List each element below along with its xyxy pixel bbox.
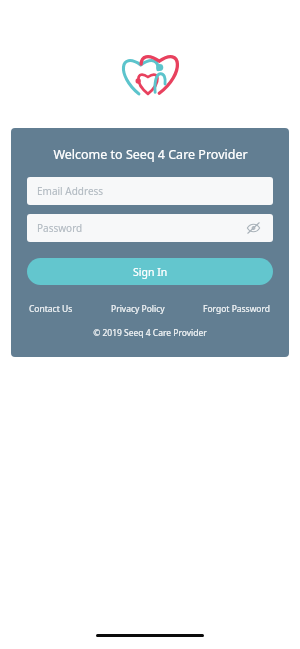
button[interactable]: Show password [243, 218, 263, 238]
staticText: Contact Us [29, 303, 73, 315]
button[interactable]: Forgot Password [201, 301, 273, 317]
button[interactable]: Password [27, 214, 273, 242]
button[interactable]: Contact Us [27, 301, 75, 317]
staticText: Welcome to Seeq 4 Care Provider [53, 146, 248, 163]
staticText: Password [37, 221, 83, 235]
staticText: © 2019 Seeq 4 Care Provider [93, 327, 207, 339]
button[interactable]: Privacy Policy [109, 301, 167, 317]
staticText: Privacy Policy [111, 303, 165, 315]
staticText: Sign In [133, 265, 168, 279]
button[interactable]: Email Address [27, 177, 273, 205]
staticText: Email Address [37, 184, 104, 198]
staticText: Forgot Password [203, 303, 271, 315]
button[interactable]: Sign In [27, 258, 273, 285]
